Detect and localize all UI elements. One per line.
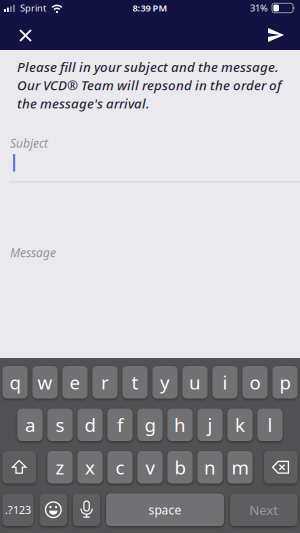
staticText: 31% bbox=[250, 2, 268, 14]
staticText: x bbox=[85, 455, 95, 480]
staticText: v bbox=[145, 455, 154, 480]
staticText: o bbox=[249, 370, 260, 395]
button[interactable]: r bbox=[92, 366, 118, 398]
staticText: z bbox=[55, 455, 64, 480]
button[interactable]: Next bbox=[230, 493, 298, 526]
button[interactable]: a bbox=[17, 408, 43, 441]
button[interactable]: t bbox=[122, 366, 148, 398]
button[interactable]: q bbox=[2, 366, 28, 398]
button[interactable]: h bbox=[167, 408, 193, 441]
button[interactable]: u bbox=[182, 366, 208, 398]
button[interactable]: c bbox=[107, 451, 133, 483]
button[interactable]: e bbox=[62, 366, 88, 398]
staticText: h bbox=[174, 412, 186, 437]
button[interactable]: d bbox=[77, 408, 103, 441]
button[interactable]: y bbox=[152, 366, 178, 398]
button[interactable]: x bbox=[77, 451, 103, 483]
button[interactable]: j bbox=[197, 408, 223, 441]
staticText: u bbox=[189, 370, 201, 395]
staticText: a bbox=[25, 412, 35, 437]
button[interactable]: k bbox=[227, 408, 253, 441]
button[interactable]: b bbox=[167, 451, 193, 483]
button[interactable]: v bbox=[137, 451, 163, 483]
button[interactable]: w bbox=[32, 366, 58, 398]
staticText: p bbox=[279, 370, 290, 395]
staticText: 8:39 PM bbox=[132, 2, 167, 14]
staticText: l bbox=[267, 412, 272, 437]
staticText: k bbox=[235, 412, 245, 437]
staticText: i bbox=[222, 370, 227, 395]
staticText: q bbox=[9, 370, 20, 395]
staticText: .?123 bbox=[5, 503, 31, 517]
staticText: e bbox=[69, 370, 80, 395]
staticText: n bbox=[204, 455, 216, 480]
button[interactable]: f bbox=[107, 408, 133, 441]
button[interactable]: .?123 bbox=[2, 493, 34, 526]
staticText: b bbox=[174, 455, 185, 480]
button[interactable] bbox=[0, 16, 50, 50]
button[interactable]: i bbox=[212, 366, 238, 398]
staticText: the message's arrival. bbox=[17, 94, 150, 112]
button[interactable]: o bbox=[242, 366, 268, 398]
staticText: Next bbox=[249, 501, 278, 519]
staticText: y bbox=[160, 370, 170, 395]
button[interactable] bbox=[250, 16, 300, 50]
button[interactable]: n bbox=[197, 451, 223, 483]
staticText: d bbox=[84, 412, 95, 437]
staticText: Please fill in your subject and the mess… bbox=[17, 58, 279, 76]
button[interactable]: l bbox=[257, 408, 283, 441]
button[interactable]: m bbox=[227, 451, 253, 483]
button[interactable] bbox=[264, 451, 298, 483]
staticText: Sprint bbox=[20, 2, 46, 14]
staticText: m bbox=[231, 455, 248, 480]
staticText: c bbox=[115, 455, 124, 480]
button[interactable]: Subject bbox=[0, 135, 300, 182]
staticText: f bbox=[117, 412, 123, 437]
staticText: Our VCD® Team will repsond in the order … bbox=[17, 76, 281, 94]
staticText: t bbox=[131, 370, 138, 395]
button[interactable]: Message bbox=[0, 245, 300, 260]
button[interactable]: s bbox=[47, 408, 73, 441]
staticText: space bbox=[149, 502, 182, 518]
staticText: w bbox=[37, 370, 52, 395]
staticText: r bbox=[101, 370, 109, 395]
button[interactable] bbox=[73, 493, 100, 526]
staticText: Message bbox=[10, 245, 56, 260]
staticText: s bbox=[55, 412, 64, 437]
button[interactable] bbox=[2, 451, 36, 483]
button[interactable]: space bbox=[106, 493, 224, 526]
button[interactable]: g bbox=[137, 408, 163, 441]
staticText: Subject bbox=[10, 135, 48, 151]
staticText: g bbox=[144, 412, 155, 437]
staticText: j bbox=[207, 412, 212, 437]
button[interactable]: z bbox=[47, 451, 73, 483]
button[interactable] bbox=[39, 493, 67, 526]
button[interactable]: p bbox=[272, 366, 298, 398]
